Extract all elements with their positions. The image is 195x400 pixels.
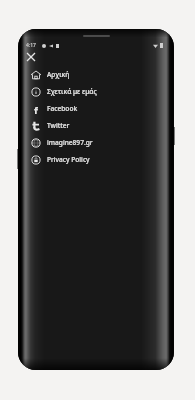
staticText: Σχετικά με εμάς — [47, 87, 97, 96]
button[interactable]: Αρχική — [28, 66, 164, 83]
button[interactable]: Privacy Policy — [28, 151, 164, 168]
button[interactable]: f — [28, 100, 164, 117]
button[interactable]: Twitter — [28, 117, 164, 134]
staticText: Twitter — [47, 121, 70, 130]
staticText: f — [34, 104, 38, 114]
button[interactable]: Σχετικά με εμάς — [28, 83, 164, 100]
staticText: Facebook — [47, 104, 78, 113]
staticText: imagine897.gr — [47, 138, 93, 147]
button[interactable]: imagine897.gr — [28, 134, 164, 151]
staticText: Αρχική — [47, 70, 70, 79]
staticText: 4:17 — [26, 42, 36, 49]
staticText: Privacy Policy — [47, 155, 90, 164]
button[interactable]: Close — [25, 51, 36, 62]
